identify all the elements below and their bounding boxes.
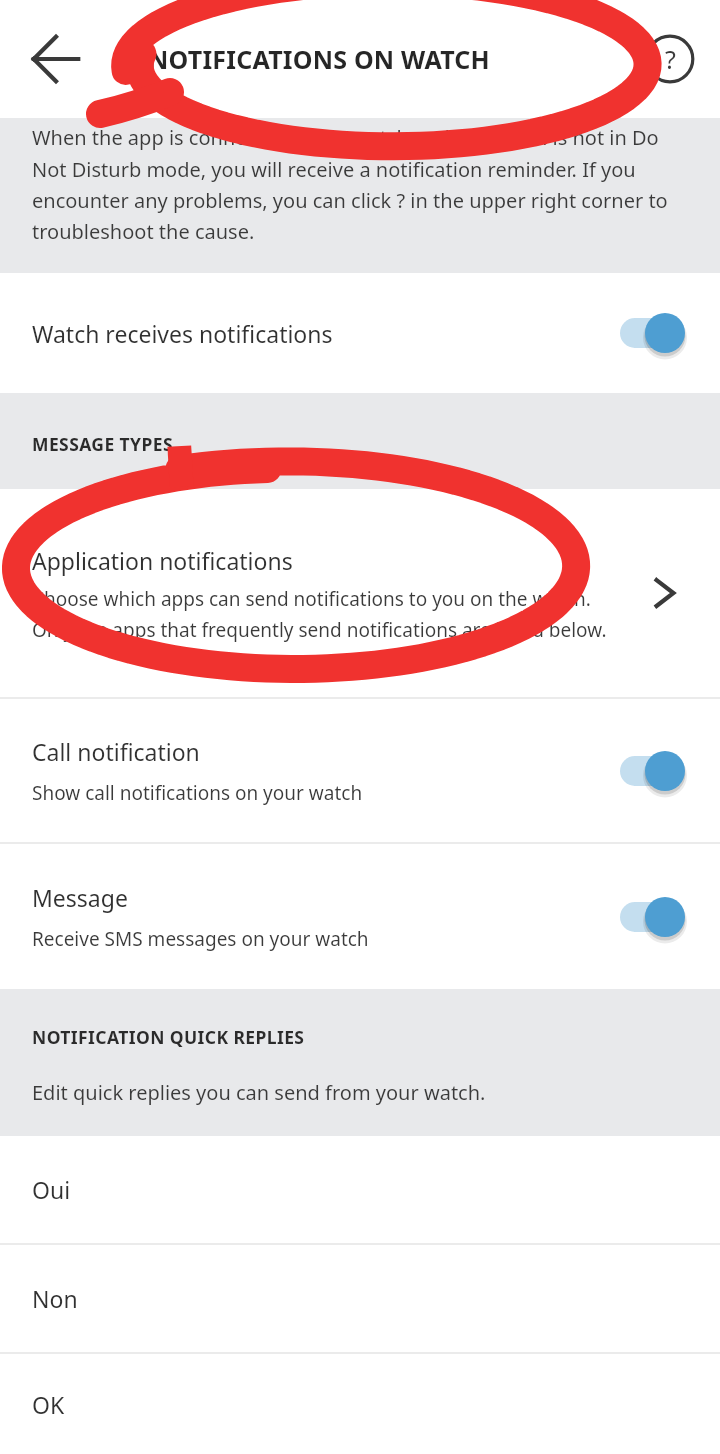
button[interactable]: Toggle	[620, 309, 688, 357]
staticText: OK	[32, 1389, 65, 1420]
button[interactable]: Watch receives notifications	[0, 273, 720, 393]
button[interactable]: Back	[14, 17, 98, 101]
staticText: Receive SMS messages on your watch	[32, 926, 369, 952]
staticText: NOTIFICATION QUICK REPLIES	[32, 1025, 305, 1049]
staticText: Non	[32, 1283, 78, 1314]
button[interactable]: OK	[0, 1354, 720, 1454]
button[interactable]: Call notification	[0, 699, 720, 842]
staticText: Message	[32, 882, 128, 913]
staticText: When the app is connected to the watch a…	[32, 124, 690, 245]
button[interactable]: Application notifications	[0, 489, 720, 697]
staticText: Choose which apps can send notifications…	[32, 586, 630, 642]
staticText: Call notification	[32, 736, 200, 767]
staticText: Oui	[32, 1174, 71, 1205]
staticText: ?	[665, 42, 676, 76]
staticText: Application notifications	[32, 545, 293, 576]
button[interactable]: Toggle	[620, 893, 688, 941]
button[interactable]: Message	[0, 844, 720, 989]
staticText: Edit quick replies you can send from you…	[32, 1079, 486, 1106]
other: Open	[642, 566, 696, 620]
button[interactable]: Non	[0, 1245, 720, 1352]
staticText: MESSAGE TYPES	[32, 432, 173, 456]
button[interactable]: Toggle	[620, 747, 688, 795]
staticText: NOTIFICATIONS ON WATCH	[148, 42, 490, 76]
staticText: Watch receives notifications	[32, 318, 333, 349]
staticText: Show call notifications on your watch	[32, 780, 363, 806]
button[interactable]: Oui	[0, 1136, 720, 1243]
button[interactable]: Help	[645, 34, 695, 84]
